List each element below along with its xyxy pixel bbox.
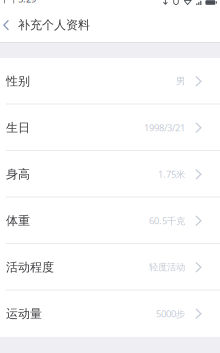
- staticText: 轻度活动: [149, 261, 185, 273]
- button[interactable]: Back: [0, 7, 18, 42]
- button[interactable]: 体重: [0, 197, 220, 244]
- button[interactable]: 运动量: [0, 290, 220, 337]
- staticText: 下午5:29: [0, 0, 36, 5]
- staticText: 60.5千克: [149, 215, 185, 227]
- staticText: 活动程度: [6, 260, 54, 275]
- staticText: 补充个人资料: [18, 18, 90, 32]
- button[interactable]: 性别: [0, 58, 220, 104]
- staticText: 5000步: [156, 308, 185, 320]
- staticText: 身高: [6, 167, 30, 182]
- staticText: 1.75米: [158, 168, 185, 180]
- button[interactable]: 生日: [0, 104, 220, 151]
- staticText: 运动量: [6, 306, 42, 321]
- staticText: 生日: [6, 120, 30, 135]
- staticText: 1998/3/21: [144, 122, 185, 134]
- staticText: 男: [176, 75, 185, 87]
- staticText: 体重: [6, 213, 30, 228]
- button[interactable]: 身高: [0, 151, 220, 197]
- button[interactable]: 活动程度: [0, 244, 220, 290]
- staticText: 性别: [6, 74, 30, 89]
